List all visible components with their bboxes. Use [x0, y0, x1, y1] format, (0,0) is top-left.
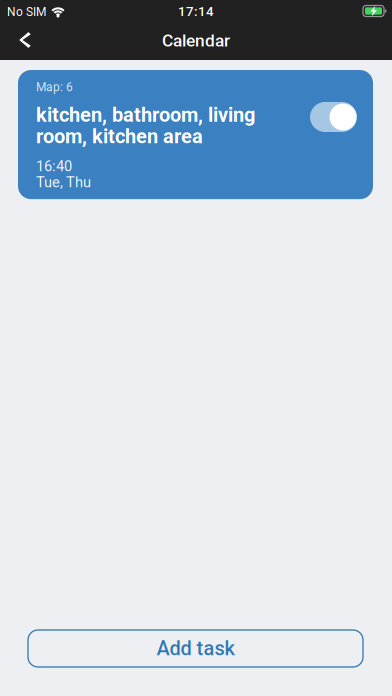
staticText: Calendar [162, 30, 230, 51]
staticText: kitchen, bathroom, living room, kitchen … [36, 104, 255, 147]
staticText: 17:14 [178, 4, 214, 19]
staticText: 16:40 [36, 158, 72, 174]
staticText: Add task [156, 637, 234, 660]
button[interactable]: Add task [28, 630, 363, 667]
button[interactable]: Back [0, 24, 46, 59]
staticText: Tue, Thu [36, 174, 91, 190]
button[interactable]: Map: 6 [18, 70, 373, 199]
staticText: Map: 6 [36, 80, 73, 94]
button[interactable]: Enable schedule [310, 102, 357, 132]
staticText: No SIM [7, 5, 46, 19]
